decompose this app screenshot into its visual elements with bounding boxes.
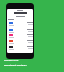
staticText: investment portfolio (4, 64, 27, 67)
button[interactable] (9, 39, 33, 44)
button[interactable] (9, 45, 33, 50)
button[interactable] (9, 21, 33, 26)
staticText: Manage your (4, 59, 19, 62)
button[interactable] (6, 3, 34, 59)
button[interactable] (9, 28, 33, 33)
button[interactable] (9, 33, 33, 38)
